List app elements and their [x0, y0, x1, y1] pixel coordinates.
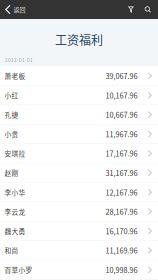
button[interactable]: 萧老板: [0, 66, 158, 86]
staticText: 12,167.96: [106, 187, 138, 197]
button[interactable]: Search: [140, 2, 156, 17]
button[interactable]: Filter: [123, 2, 140, 17]
button[interactable]: 百草小罗: [0, 260, 158, 280]
staticText: 小红: [4, 90, 18, 100]
button[interactable]: 魏大勇: [0, 221, 158, 241]
staticText: 11,169.96: [106, 245, 138, 256]
staticText: 孔捷: [4, 110, 18, 119]
staticText: 工资福利: [55, 31, 103, 48]
staticText: 2022-01-01: [5, 56, 33, 63]
staticText: 返回: [13, 5, 25, 14]
staticText: 百草小罗: [4, 265, 32, 275]
button[interactable]: 李云龙: [0, 202, 158, 221]
staticText: 39,067.96: [106, 70, 138, 81]
button[interactable]: 小红: [0, 86, 158, 105]
staticText: 小贵: [4, 129, 18, 139]
button[interactable]: 赵刚: [0, 163, 158, 183]
staticText: 萧老板: [4, 71, 25, 81]
staticText: 10,667.96: [106, 109, 138, 120]
button[interactable]: 安琪拉: [0, 144, 158, 163]
staticText: 11,967.96: [106, 129, 138, 139]
staticText: 10,167.96: [106, 90, 138, 100]
button[interactable]: 李小华: [0, 183, 158, 202]
button[interactable]: 小贵: [0, 124, 158, 144]
staticText: 10,998.96: [106, 264, 138, 275]
button[interactable]: 孔捷: [0, 105, 158, 124]
staticText: 魏大勇: [4, 226, 25, 236]
button[interactable]: 和尚: [0, 241, 158, 260]
staticText: 赵刚: [4, 168, 18, 178]
staticText: 李小华: [4, 187, 25, 197]
staticText: 李云龙: [4, 207, 25, 216]
staticText: 17,167.96: [106, 148, 138, 159]
staticText: 安琪拉: [4, 149, 25, 158]
staticText: 16,170.96: [106, 226, 138, 236]
staticText: 28,167.96: [106, 206, 138, 217]
staticText: 和尚: [4, 246, 18, 255]
staticText: 31,167.96: [106, 167, 138, 178]
button[interactable]: 返回: [0, 1, 25, 18]
